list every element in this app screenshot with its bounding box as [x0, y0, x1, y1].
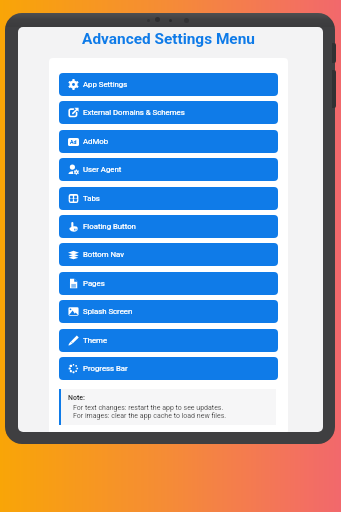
- staticText: Pages: [83, 279, 105, 288]
- button[interactable]: App Settings: [59, 73, 278, 96]
- button[interactable]: Progress Bar: [59, 357, 278, 380]
- staticText: App Settings: [83, 80, 128, 89]
- staticText: Theme: [83, 336, 108, 345]
- staticText: For text changes: restart the app to see…: [73, 404, 224, 412]
- button[interactable]: Bottom Nav: [59, 243, 278, 266]
- staticText: Ad: [70, 139, 77, 145]
- staticText: Bottom Nav: [83, 250, 125, 259]
- button[interactable]: Tabs: [59, 187, 278, 210]
- button[interactable]: Theme: [59, 329, 278, 352]
- staticText: Progress Bar: [83, 364, 128, 373]
- staticText: User Agent: [83, 165, 122, 174]
- button[interactable]: External Domains & Schemes: [59, 101, 278, 124]
- button[interactable]: Ad: [59, 130, 278, 153]
- staticText: AdMob: [83, 137, 109, 146]
- staticText: Floating Button: [83, 222, 136, 231]
- button[interactable]: Splash Screen: [59, 300, 278, 323]
- staticText: External Domains & Schemes: [83, 108, 185, 117]
- button[interactable]: Pages: [59, 272, 278, 295]
- button[interactable]: User Agent: [59, 158, 278, 181]
- staticText: For images: clear the app cache to load …: [73, 412, 227, 420]
- staticText: Advanced Settings Menu: [49, 30, 288, 48]
- staticText: Splash Screen: [83, 307, 133, 316]
- staticText: Note:: [68, 394, 86, 402]
- button[interactable]: Floating Button: [59, 215, 278, 238]
- staticText: Tabs: [83, 194, 100, 203]
